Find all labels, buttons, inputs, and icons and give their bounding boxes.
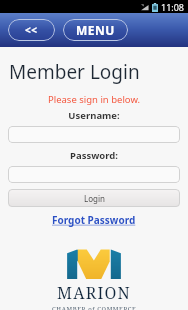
staticText: << [25, 23, 38, 37]
button[interactable]: MENU [63, 19, 128, 41]
button[interactable]: Text field [8, 166, 180, 183]
staticText: Please sign in below. [0, 93, 188, 106]
button[interactable]: Text field [8, 126, 180, 143]
button[interactable]: Forgot Password [52, 213, 136, 227]
staticText: Username: [0, 109, 188, 122]
staticText: Login [84, 193, 105, 204]
staticText: CHAMBER of COMMERCE [52, 305, 137, 310]
staticText: Member Login [9, 59, 140, 85]
button[interactable]: Back [8, 19, 55, 41]
staticText: Password: [0, 149, 188, 162]
button[interactable]: Login [8, 189, 180, 207]
staticText: Forgot Password [52, 213, 136, 227]
staticText: MENU [76, 22, 115, 38]
staticText: 11:08 [161, 1, 185, 13]
staticText: MARION [57, 282, 131, 304]
